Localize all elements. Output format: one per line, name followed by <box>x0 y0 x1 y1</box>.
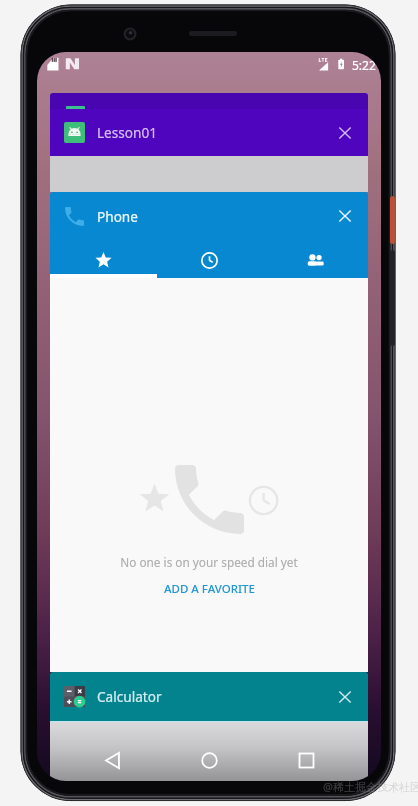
button[interactable]: Favorites <box>50 240 156 278</box>
staticText: Lesson01 <box>97 123 157 142</box>
staticText: Calculator <box>97 687 162 706</box>
button[interactable]: Phone <box>50 192 368 240</box>
button[interactable]: Back <box>100 748 125 773</box>
button[interactable]: Close Calculator <box>331 683 359 711</box>
button[interactable]: Recents <box>156 240 262 278</box>
button[interactable]: Recents <box>294 748 319 773</box>
button[interactable]: Contacts <box>262 240 368 278</box>
button[interactable]: Calculator <box>50 672 368 721</box>
button[interactable]: Lesson01 <box>50 93 368 156</box>
button[interactable]: Close Lesson01 <box>331 119 359 147</box>
staticText: 5:22 <box>352 57 376 73</box>
staticText: @稀土掘金技术社区 <box>323 779 418 794</box>
staticText: Phone <box>97 207 138 226</box>
button[interactable]: ADD A FAVORITE <box>154 577 265 601</box>
button[interactable]: Home <box>197 748 222 773</box>
staticText: No one is on your speed dial yet <box>120 554 298 570</box>
staticText: ADD A FAVORITE <box>164 581 255 597</box>
button[interactable]: Close Phone <box>331 202 359 230</box>
